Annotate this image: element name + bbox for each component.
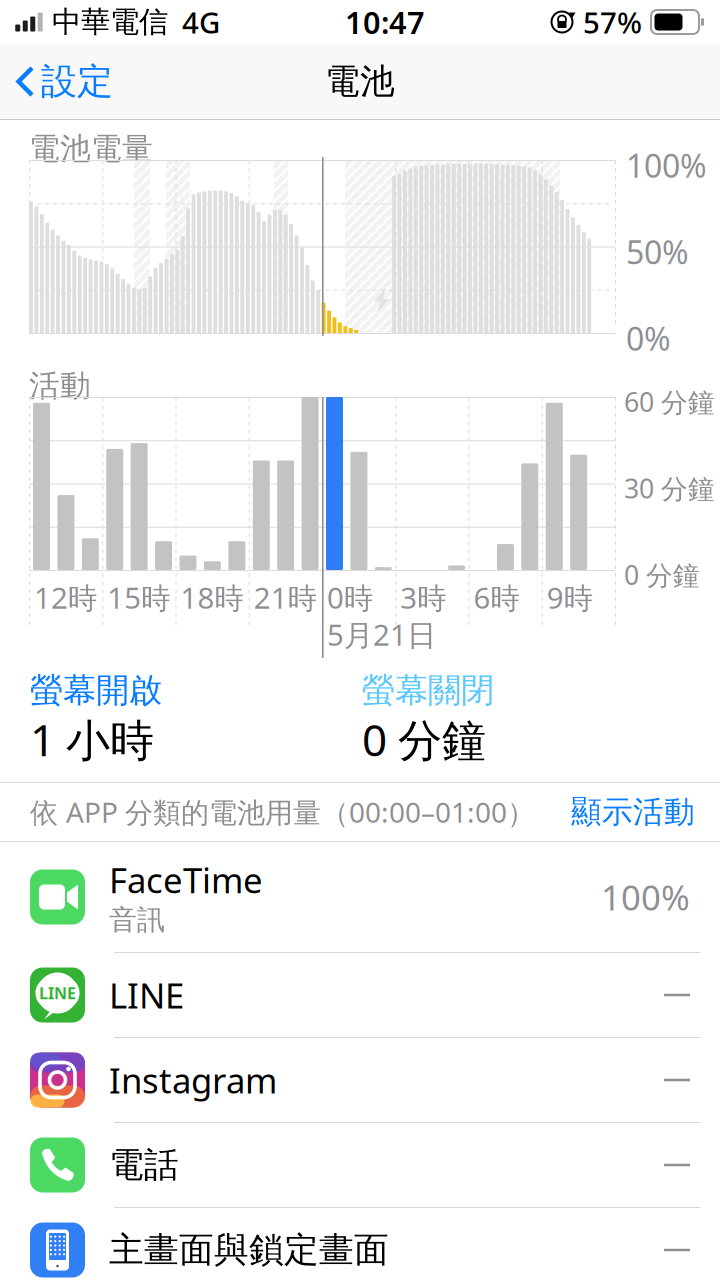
staticText: 依 APP 分類的電池用量（00:00–01:00） xyxy=(30,793,535,831)
staticText: 音訊 xyxy=(109,903,165,937)
staticText: 10:47 xyxy=(345,2,425,42)
staticText: LINE xyxy=(39,982,76,1004)
staticText: 0 分鐘 xyxy=(624,557,700,592)
staticText: 100% xyxy=(626,144,707,186)
staticText: 電池 xyxy=(325,60,395,103)
staticText: 3時 xyxy=(400,578,446,617)
staticText: 電池電量 xyxy=(29,130,153,168)
staticText: 60 分鐘 xyxy=(624,384,715,419)
staticText: 100% xyxy=(601,874,690,920)
button[interactable]: 電話 xyxy=(0,1123,720,1208)
staticText: 4G xyxy=(182,2,220,41)
staticText: 0 分鐘 xyxy=(362,710,486,768)
button[interactable]: 主畫面與鎖定畫面 xyxy=(0,1208,720,1280)
staticText: 12時 xyxy=(34,578,97,617)
staticText: 1 小時 xyxy=(30,710,154,768)
staticText: Instagram xyxy=(109,1057,277,1103)
staticText: 中華電信 xyxy=(52,4,168,40)
staticText: 螢幕開啟 xyxy=(30,670,162,711)
button[interactable]: 設定 xyxy=(0,49,113,114)
staticText: 30 分鐘 xyxy=(624,470,715,506)
staticText: LINE xyxy=(109,972,184,1018)
staticText: 設定 xyxy=(41,59,113,104)
staticText: 6時 xyxy=(473,578,519,617)
staticText: 0時 xyxy=(327,578,373,617)
staticText: 螢幕關閉 xyxy=(362,670,494,711)
staticText: 57% xyxy=(583,2,642,41)
button[interactable]: FaceTime xyxy=(0,842,720,953)
staticText: FaceTime xyxy=(109,857,263,903)
staticText: 18時 xyxy=(180,578,243,617)
button[interactable]: LINE xyxy=(0,953,720,1038)
staticText: 電話 xyxy=(109,1144,179,1186)
staticText: 活動 xyxy=(29,367,91,405)
button[interactable]: Instagram xyxy=(0,1038,720,1123)
staticText: 顯示活動 xyxy=(571,793,695,831)
staticText: 主畫面與鎖定畫面 xyxy=(109,1229,389,1271)
staticText: 50% xyxy=(626,230,689,273)
staticText: 15時 xyxy=(107,578,170,617)
staticText: 21時 xyxy=(254,578,317,617)
staticText: 5月21日 xyxy=(327,615,436,654)
staticText: 0% xyxy=(626,317,671,359)
staticText: 9時 xyxy=(547,578,593,617)
button[interactable]: 顯示活動 xyxy=(571,785,720,839)
